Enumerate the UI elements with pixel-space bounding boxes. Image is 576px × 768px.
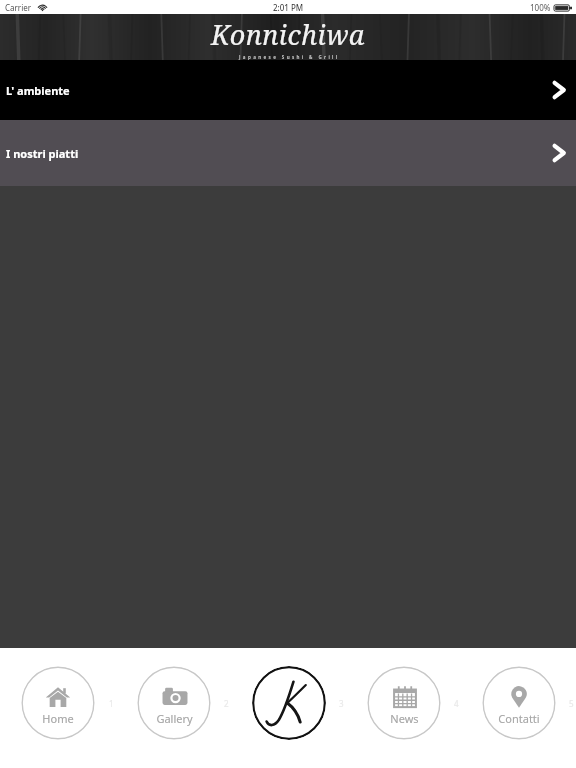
staticText: 3 [339,698,344,709]
staticText: Gallery [156,711,193,726]
staticText: Konnichiwa [211,16,365,53]
staticText: Home [42,711,74,726]
button[interactable]: Contatti [482,666,556,740]
staticText: Contatti [498,711,540,726]
button[interactable]: News [367,666,441,740]
staticText: 2 [224,698,229,709]
staticText: I nostri piatti [6,146,548,161]
staticText: L' ambiente [6,83,548,98]
staticText: 100% [530,2,551,13]
button[interactable]: I nostri piatti [0,120,576,186]
staticText: 1 [109,698,114,709]
staticText: 4 [454,698,459,709]
button[interactable]: Home [21,666,95,740]
staticText: Carrier [5,2,32,13]
staticText: J a p a n e s e S u s h i & G r i l l [239,54,338,60]
staticText: 5 [569,698,574,709]
staticText: 2:01 PM [273,2,304,13]
button[interactable]: Konnichiwa [252,666,326,740]
button[interactable]: L' ambiente [0,60,576,120]
button[interactable]: Gallery [137,666,211,740]
staticText: News [390,711,419,726]
